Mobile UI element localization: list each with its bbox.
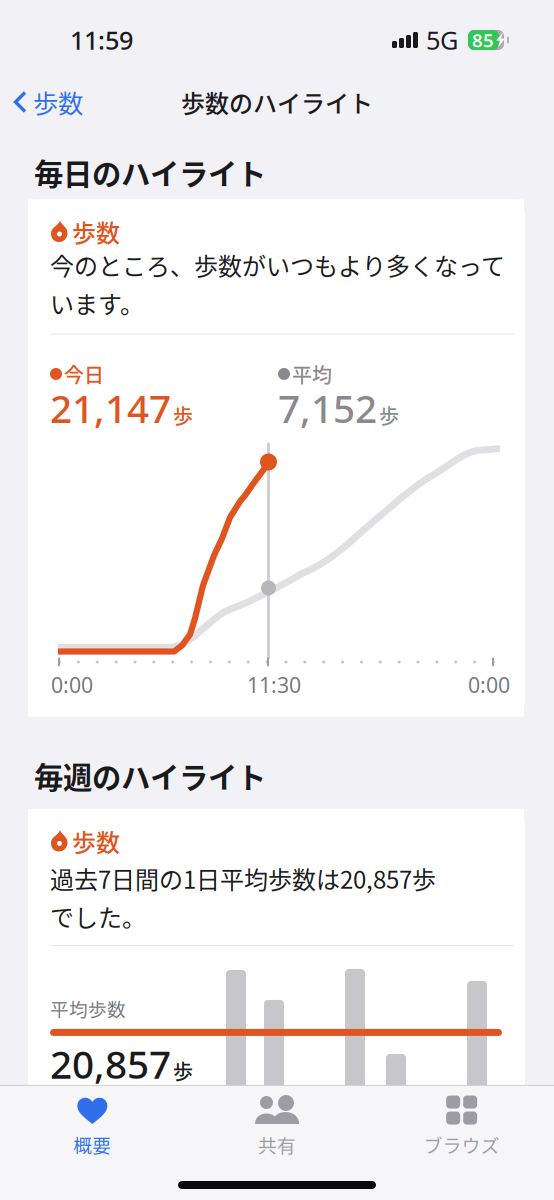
staticText: 7,152 (278, 382, 377, 434)
staticText: 20,857 (50, 1038, 171, 1089)
staticText: 毎週のハイライト (34, 754, 266, 797)
staticText: 今のところ、歩数がいつもより多くなって (50, 247, 505, 282)
button[interactable]: 概要 (0, 1086, 185, 1168)
staticText: 歩数 (72, 214, 120, 249)
staticText: 85 (472, 28, 494, 52)
staticText: 過去7日間の1日平均歩数は20,857歩 (50, 861, 436, 896)
staticText: います。 (50, 285, 144, 320)
staticText: 歩数 (33, 84, 83, 120)
staticText: 毎日のハイライト (34, 151, 266, 193)
staticText: 歩 (379, 401, 399, 430)
staticText: 11:30 (247, 670, 301, 699)
staticText: 11:59 (70, 23, 133, 57)
button[interactable]: ブラウズ (369, 1086, 554, 1168)
staticText: 歩 (173, 1056, 193, 1085)
staticText: 今日 (64, 359, 104, 388)
staticText: 5G (426, 23, 458, 57)
staticText: ブラウズ (424, 1131, 500, 1158)
button[interactable]: 共有 (185, 1086, 369, 1168)
staticText: 平均 (292, 359, 332, 388)
staticText: 歩数 (72, 824, 120, 858)
staticText: 平均歩数 (50, 995, 126, 1022)
staticText: 歩 (173, 401, 193, 430)
staticText: 概要 (73, 1131, 111, 1158)
staticText: 共有 (258, 1131, 296, 1158)
staticText: 0:00 (51, 670, 93, 699)
button[interactable]: 歩数 (0, 72, 95, 126)
staticText: 21,147 (50, 382, 171, 434)
staticText: 歩数のハイライト (181, 85, 373, 119)
staticText: 0:00 (468, 670, 510, 699)
staticText: でした。 (50, 899, 146, 934)
